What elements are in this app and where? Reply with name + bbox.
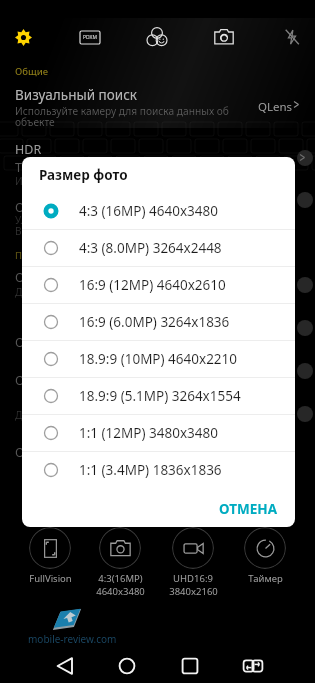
staticText: Использовать камеру для слежения bbox=[15, 174, 194, 188]
button[interactable]: Resolution bbox=[78, 25, 102, 49]
button[interactable]: FullVision bbox=[14, 527, 86, 585]
button[interactable]: Flash off bbox=[280, 25, 304, 49]
button[interactable]: 18.9:9 (10MP) 4640x2210 bbox=[22, 341, 295, 377]
staticText: HDR bbox=[15, 141, 42, 158]
staticText: PDXM bbox=[83, 34, 98, 41]
staticText: Добавлять координаты к фото bbox=[15, 285, 166, 299]
staticText: Общие bbox=[15, 65, 49, 78]
staticText: Выделение объектов bbox=[15, 224, 120, 238]
staticText: 4:3 (8.0MP) 3264x2448 bbox=[79, 239, 222, 257]
staticText: 4:3 (16MP) 4640x3480 bbox=[79, 202, 218, 220]
button[interactable]: 18.9:9 (5.1MP) 3264x1554 bbox=[22, 378, 295, 414]
staticText: 1:1 (3.4MP) 1836x1836 bbox=[79, 461, 222, 479]
button[interactable]: Home bbox=[103, 648, 151, 683]
button[interactable]: 1:1 (12MP) 3480x3480 bbox=[22, 415, 295, 451]
staticText: Обзор режимов bbox=[15, 334, 112, 351]
button[interactable]: Split screen bbox=[229, 648, 277, 683]
button[interactable]: Recents bbox=[166, 648, 214, 683]
staticText: UHD16:9 bbox=[173, 572, 213, 585]
staticText: 3840x2160 bbox=[169, 585, 218, 598]
button[interactable]: 16:9 (6.0MP) 3264x1836 bbox=[22, 304, 295, 340]
button[interactable]: 4:3(16MP) bbox=[84, 527, 156, 598]
staticText: mobile-review.com bbox=[28, 632, 117, 646]
staticText: Трекинг автофокуса bbox=[15, 159, 137, 176]
button[interactable]: Toggle bbox=[297, 320, 315, 336]
staticText: 16:9 (6.0MP) 3264x1836 bbox=[79, 313, 230, 331]
staticText: QLens bbox=[258, 99, 293, 115]
button[interactable]: 16:9 (12MP) 4640x2610 bbox=[22, 267, 295, 303]
button[interactable]: 4:3 (8.0MP) 3264x2448 bbox=[22, 230, 295, 266]
staticText: Отображение сетки bbox=[15, 372, 135, 389]
button[interactable]: Toggle bbox=[297, 363, 315, 379]
button[interactable]: Back bbox=[41, 648, 89, 683]
button[interactable]: Filters bbox=[145, 25, 169, 49]
staticText: Размер фото bbox=[39, 166, 128, 184]
staticText: 18.9:9 (10MP) 4640x2210 bbox=[79, 350, 238, 368]
staticText: FullVision bbox=[29, 572, 72, 585]
staticText: 16:9 (12MP) 4640x2610 bbox=[79, 276, 226, 294]
button[interactable]: Toggle bbox=[297, 150, 315, 166]
staticText: ОТМЕНА bbox=[219, 500, 278, 518]
button[interactable]: Switch camera bbox=[212, 25, 236, 49]
staticText: Основная камера bbox=[15, 444, 123, 461]
staticText: 18.9:9 (5.1MP) 3264x1554 bbox=[79, 387, 241, 405]
button[interactable]: 1:1 (3.4MP) 1836x1836 bbox=[22, 452, 295, 488]
button[interactable]: ОТМЕНА bbox=[213, 496, 284, 522]
button[interactable]: Таймер bbox=[229, 527, 301, 585]
staticText: Используйте камеру для поиска данных об … bbox=[15, 104, 235, 128]
staticText: 4:3(16MP) bbox=[98, 572, 143, 585]
staticText: Полезное bbox=[15, 249, 61, 262]
staticText: Таймер bbox=[248, 572, 283, 585]
staticText: 4640x3480 bbox=[96, 585, 145, 598]
staticText: Визуальный поиск bbox=[15, 86, 137, 104]
button[interactable]: Toggle bbox=[297, 277, 315, 293]
button[interactable]: Toggle bbox=[297, 192, 315, 208]
staticText: Улучшение снимков bbox=[15, 213, 116, 227]
button[interactable]: Визуальный поиск bbox=[0, 86, 315, 128]
button[interactable]: Toggle bbox=[297, 406, 315, 422]
button[interactable]: 4:3 (16MP) 4640x3480 bbox=[22, 193, 295, 229]
staticText: Отметка местоположения bbox=[15, 269, 174, 286]
staticText: Другие настройки bbox=[15, 408, 105, 422]
staticText: Отслеживание движений bbox=[15, 199, 169, 216]
button[interactable]: UHD16:9 bbox=[157, 527, 229, 598]
button[interactable]: Settings bbox=[11, 25, 35, 49]
staticText: 1:1 (12MP) 3480x3480 bbox=[79, 424, 218, 442]
